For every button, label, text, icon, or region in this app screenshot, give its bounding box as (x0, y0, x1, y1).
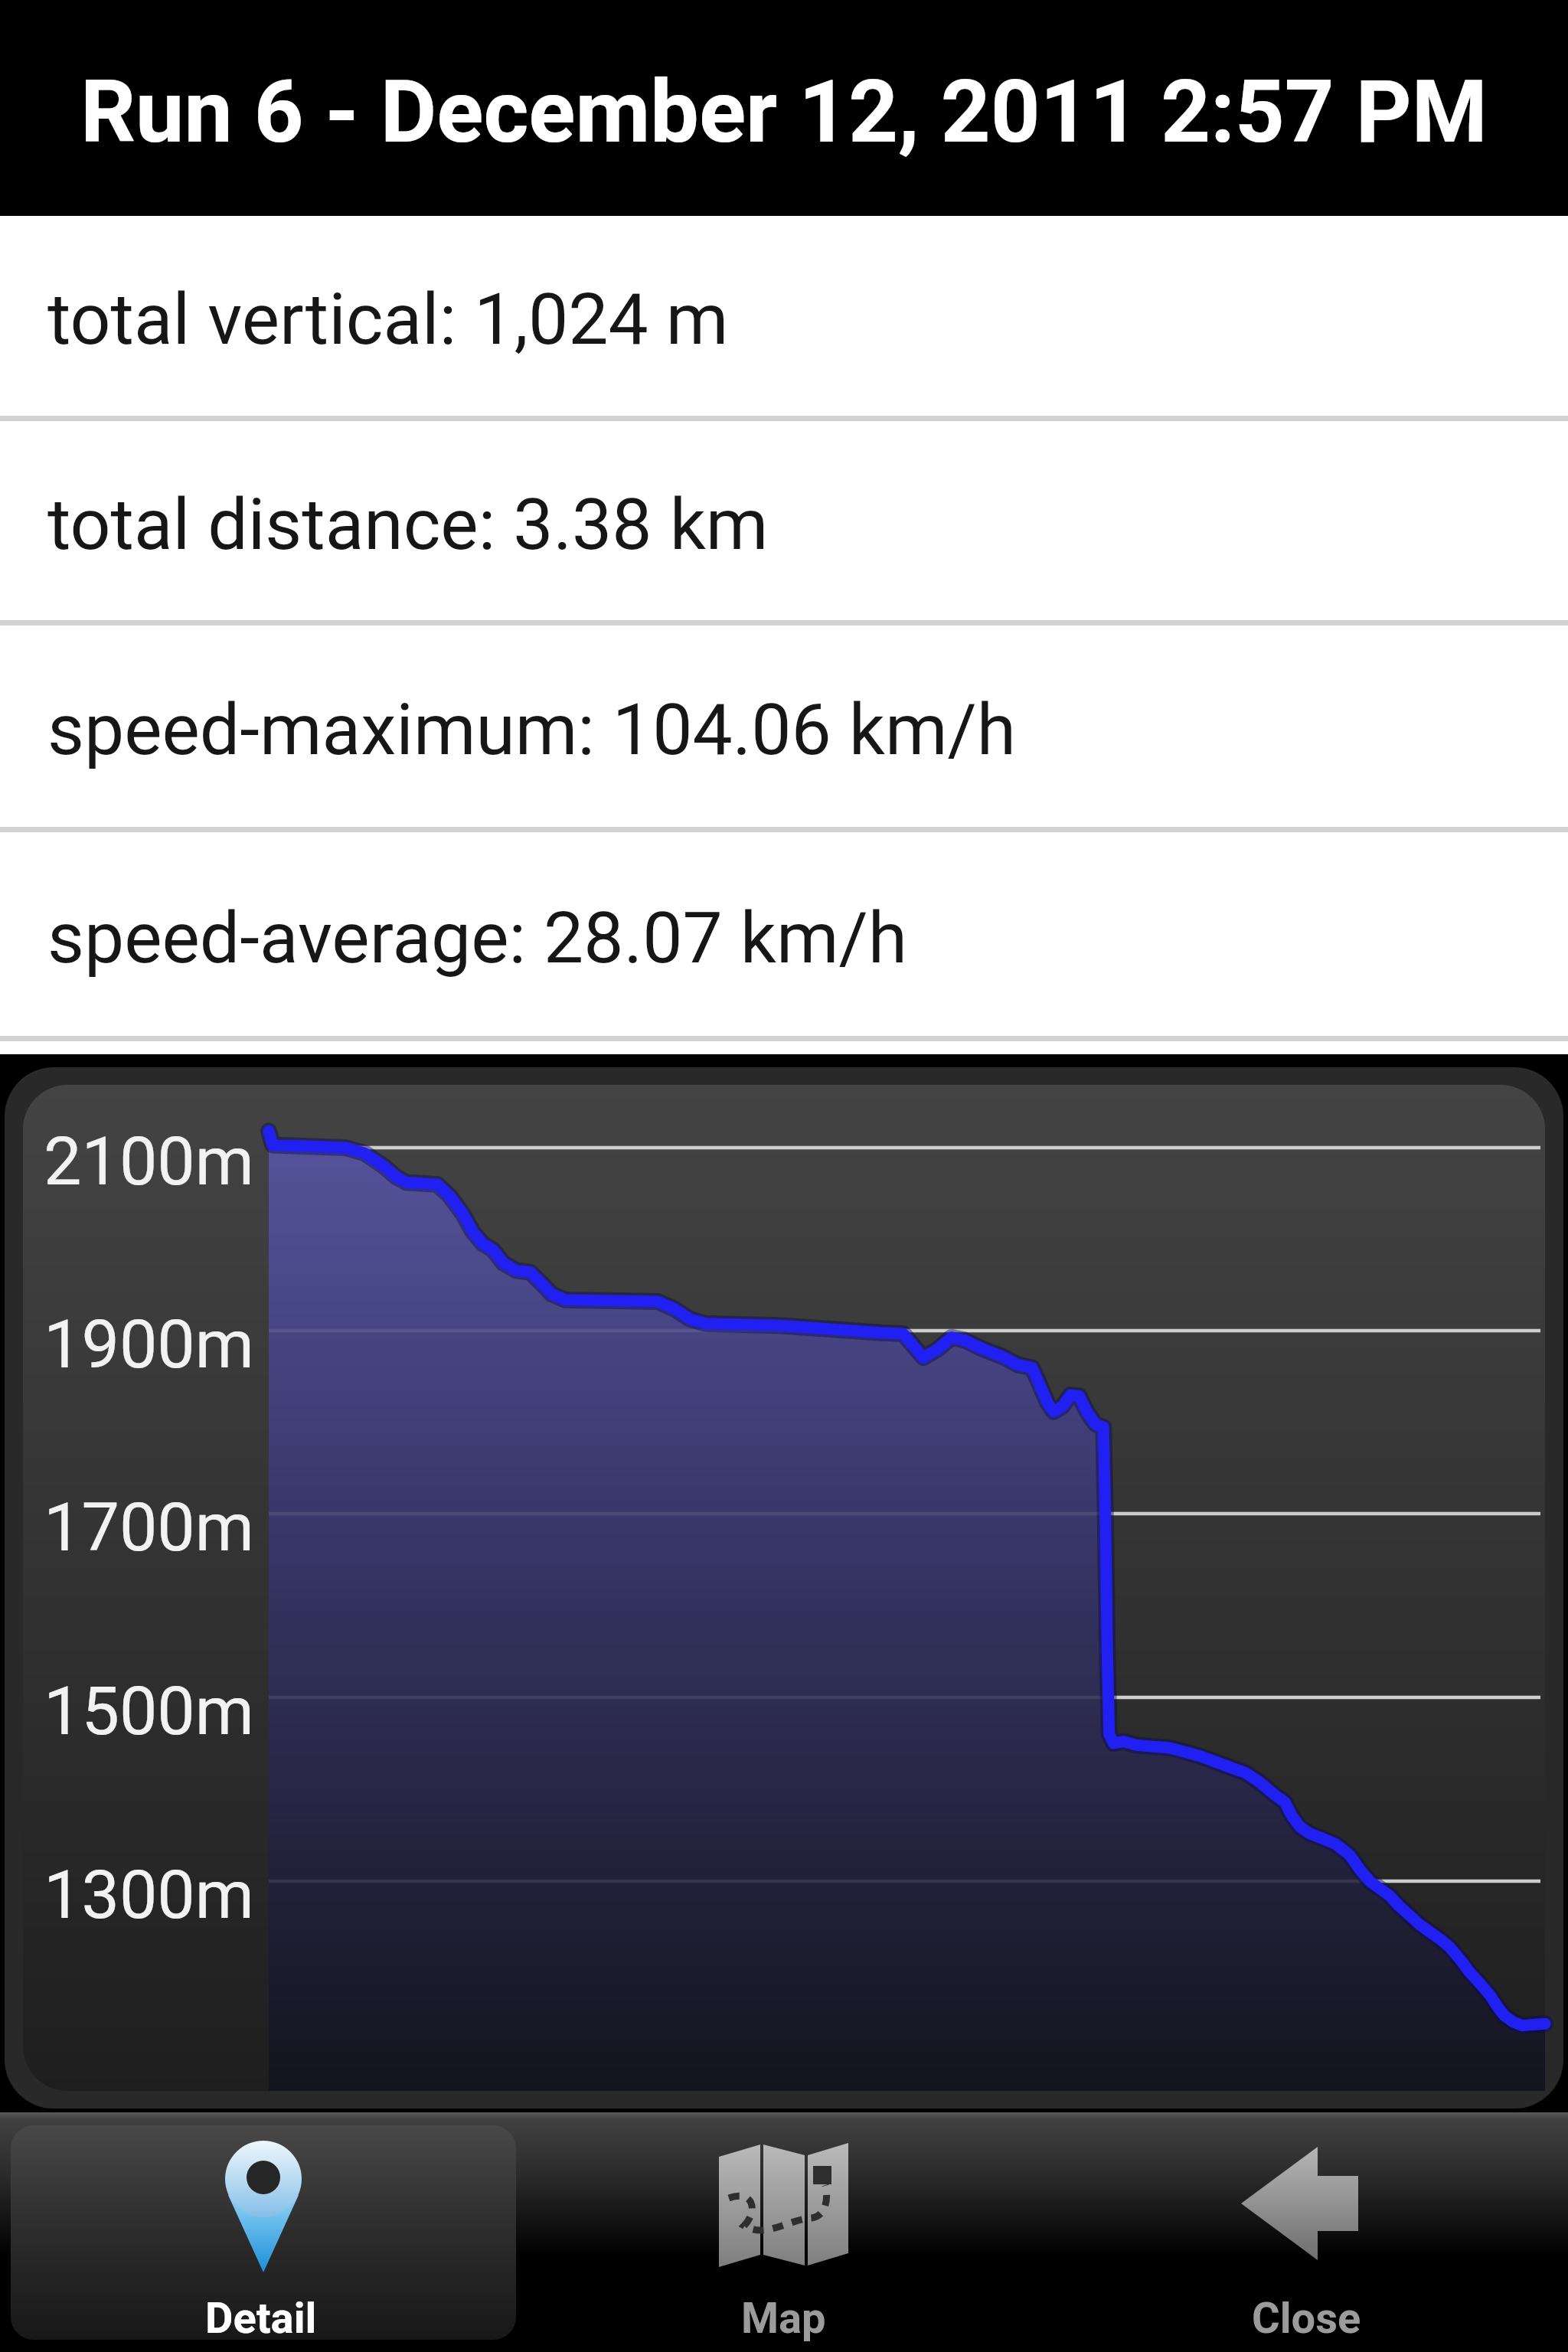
staticText: speed-maximum: 104.06 km/h (47, 688, 1017, 772)
staticText: 1900m (44, 1305, 254, 1383)
staticText: Map (741, 2293, 826, 2344)
staticText: 1700m (44, 1488, 254, 1566)
button[interactable]: Close (1045, 2112, 1568, 2352)
staticText: Detail (205, 2293, 317, 2344)
staticText: Run 6 - December 12, 2011 2:57 PM (80, 61, 1488, 162)
staticText: total vertical: 1,024 m (47, 278, 729, 361)
button[interactable]: Map (522, 2112, 1045, 2352)
staticText: 2100m (44, 1122, 254, 1200)
button[interactable]: Detail (0, 2112, 522, 2352)
staticText: total distance: 3.38 km (47, 483, 769, 567)
staticText: Close (1252, 2293, 1361, 2344)
staticText: speed-average: 28.07 km/h (47, 897, 908, 980)
staticText: 1300m (44, 1855, 254, 1934)
staticText: 1500m (44, 1671, 254, 1750)
